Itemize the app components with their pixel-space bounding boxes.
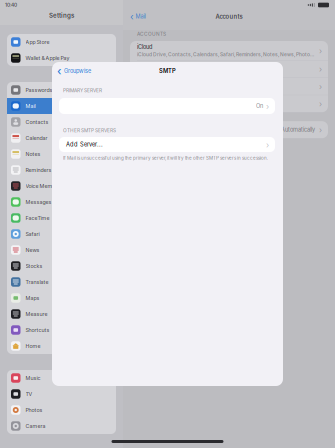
staticText: ‹ xyxy=(130,11,134,22)
button[interactable]: Translate xyxy=(7,274,116,290)
staticText: Calendar xyxy=(25,135,47,141)
staticText: Add Server... xyxy=(66,141,103,148)
staticText: If Mail is unsuccessful using the primar… xyxy=(63,155,268,161)
staticText: 10:40 xyxy=(5,2,17,8)
staticText: › xyxy=(319,125,322,135)
button[interactable]: Contacts xyxy=(7,114,116,130)
staticText: FaceTime xyxy=(25,215,49,221)
button[interactable]: Automatically xyxy=(130,121,328,138)
button[interactable]: Voice Memos xyxy=(7,178,116,194)
button[interactable]: App Store xyxy=(7,34,116,50)
button[interactable]: Mail xyxy=(7,98,116,114)
button[interactable]: Passwords xyxy=(7,82,116,98)
staticText: › xyxy=(319,64,322,74)
staticText: › xyxy=(319,81,322,91)
staticText: Voice Memos xyxy=(25,183,58,189)
staticText: Mail xyxy=(25,103,35,109)
staticText: Translate xyxy=(25,279,48,285)
button[interactable]: Shortcuts xyxy=(7,322,116,338)
button[interactable]: Reminders xyxy=(7,162,116,178)
button[interactable]: TV xyxy=(7,386,116,402)
button[interactable]: Music xyxy=(7,370,116,386)
button[interactable]: Calendar xyxy=(7,130,116,146)
button[interactable]: News xyxy=(7,242,116,258)
staticText: › xyxy=(319,99,322,109)
staticText: OTHER SMTP SERVERS xyxy=(63,128,116,133)
button[interactable]: Camera xyxy=(7,418,116,434)
button[interactable]: ‹ xyxy=(52,62,95,79)
staticText: Groupwise xyxy=(64,68,91,74)
staticText: Shortcuts xyxy=(25,327,49,333)
staticText: PRIMARY SERVER xyxy=(63,88,102,93)
staticText: iCloud xyxy=(137,44,152,50)
button[interactable]: Messages xyxy=(7,194,116,210)
staticText: SMTP xyxy=(159,67,176,74)
staticText: Home xyxy=(25,343,40,349)
button[interactable]: › xyxy=(130,78,328,95)
button[interactable]: Photos xyxy=(7,402,116,418)
staticText: Wallet & Apple Pay xyxy=(25,55,69,61)
button[interactable]: ‹ xyxy=(123,10,149,23)
staticText: Safari xyxy=(25,231,39,237)
staticText: App Store xyxy=(25,39,49,45)
staticText: Notes xyxy=(25,151,40,157)
staticText: Exchange xyxy=(137,65,161,72)
staticText: Measure xyxy=(25,311,47,317)
staticText: › xyxy=(266,139,269,149)
button[interactable]: Safari xyxy=(7,226,116,242)
staticText: Passwords xyxy=(25,87,52,93)
staticText: › xyxy=(266,101,269,111)
button[interactable]: › xyxy=(130,95,328,112)
staticText: Stocks xyxy=(25,263,42,269)
staticText: iCloud Drive, Contacts, Calendars, Safar… xyxy=(137,51,316,57)
button[interactable]: Maps xyxy=(7,290,116,306)
staticText: Messages xyxy=(25,199,51,205)
staticText: On xyxy=(256,103,263,109)
staticText: Contacts xyxy=(25,119,48,125)
staticText: Settings xyxy=(49,12,74,19)
staticText: Accounts xyxy=(215,13,242,20)
button[interactable]: Measure xyxy=(7,306,116,322)
button[interactable]: Wallet & Apple Pay xyxy=(7,50,116,66)
button[interactable]: › xyxy=(130,60,328,77)
staticText: ‹ xyxy=(57,64,62,78)
staticText: Photos xyxy=(25,407,42,413)
button[interactable]: Home xyxy=(7,338,116,354)
button[interactable]: Notes xyxy=(7,146,116,162)
staticText: › xyxy=(319,46,322,55)
staticText: Reminders xyxy=(25,167,51,173)
staticText: Automatically xyxy=(281,126,315,133)
button[interactable]: Stocks xyxy=(7,258,116,274)
staticText: ACCOUNTS xyxy=(137,31,166,37)
staticText: News xyxy=(25,247,39,253)
staticText: Music xyxy=(25,375,40,381)
staticText: Mail xyxy=(135,13,145,20)
button[interactable]: On xyxy=(59,98,275,114)
staticText: Camera xyxy=(25,423,45,429)
button[interactable]: › xyxy=(130,41,328,60)
button[interactable]: FaceTime xyxy=(7,210,116,226)
button[interactable]: Add Server... xyxy=(59,137,275,152)
staticText: TV xyxy=(25,391,32,397)
staticText: Maps xyxy=(25,295,39,301)
